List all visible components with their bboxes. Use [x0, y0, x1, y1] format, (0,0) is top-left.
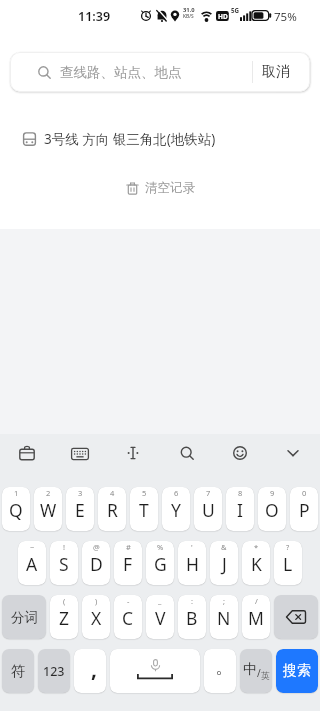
button[interactable] — [110, 649, 200, 693]
staticText: H — [186, 552, 199, 576]
staticText: Q — [9, 498, 23, 522]
staticText: % — [157, 542, 164, 552]
staticText: F — [123, 552, 133, 576]
staticText: 5G — [231, 6, 240, 14]
staticText: P — [299, 498, 310, 522]
button[interactable]: _ — [146, 595, 174, 639]
button[interactable]: 2 — [34, 487, 62, 531]
staticText: ) — [95, 596, 98, 606]
button[interactable]: ' — [178, 541, 206, 585]
staticText: 搜索 — [283, 662, 311, 680]
staticText: _ — [158, 596, 162, 606]
staticText: K — [251, 552, 262, 576]
staticText: ~ — [30, 542, 35, 552]
staticText: 9 — [270, 488, 275, 498]
button[interactable]: 中/英 — [240, 649, 272, 693]
button[interactable]: # — [114, 541, 142, 585]
button[interactable]: ; — [210, 595, 238, 639]
button[interactable] — [276, 441, 310, 465]
button[interactable]: @ — [82, 541, 110, 585]
button[interactable]: 清空记录 — [0, 176, 320, 200]
staticText: / — [255, 596, 258, 606]
staticText: 。 — [215, 656, 233, 679]
button[interactable]: ( — [50, 595, 78, 639]
button[interactable] — [116, 441, 150, 465]
staticText: I — [237, 498, 243, 522]
staticText: O — [265, 498, 279, 522]
button[interactable]: % — [146, 541, 174, 585]
button[interactable]: 8 — [226, 487, 254, 531]
button[interactable] — [223, 441, 257, 465]
staticText: V — [155, 606, 166, 630]
button[interactable] — [274, 595, 318, 639]
button[interactable]: 1 — [2, 487, 30, 531]
button[interactable]: 6 — [162, 487, 190, 531]
button[interactable]: 0 — [290, 487, 318, 531]
button[interactable]: 9 — [258, 487, 286, 531]
staticText: 1 — [14, 488, 19, 498]
staticText: 6 — [174, 488, 179, 498]
button[interactable]: 符 — [2, 649, 34, 693]
staticText: HD — [218, 12, 228, 21]
staticText: R — [107, 498, 118, 522]
button[interactable]: 3 — [66, 487, 94, 531]
staticText: ? — [286, 542, 290, 552]
staticText: ' — [191, 542, 193, 552]
button[interactable]: ? — [274, 541, 302, 585]
staticText: ; — [223, 596, 226, 606]
button[interactable]: 分词 — [2, 595, 46, 639]
staticText: * — [254, 542, 259, 552]
staticText: Y — [171, 498, 181, 522]
staticText: : — [191, 596, 194, 606]
staticText: 11:39 — [78, 8, 111, 25]
staticText: 75% — [274, 9, 297, 25]
staticText: 8 — [238, 488, 243, 498]
staticText: ! — [63, 542, 66, 552]
staticText: & — [221, 542, 227, 552]
button[interactable]: 查线路、站点、地点 — [10, 52, 310, 92]
staticText: - — [127, 596, 130, 606]
button[interactable]: / — [242, 595, 270, 639]
button[interactable] — [10, 441, 44, 465]
staticText: U — [202, 498, 215, 522]
button[interactable] — [170, 441, 204, 465]
staticText: 中/英 — [243, 661, 270, 681]
button[interactable]: : — [178, 595, 206, 639]
button[interactable]: ~ — [18, 541, 46, 585]
staticText: A — [26, 552, 38, 576]
staticText: Z — [59, 606, 70, 630]
button[interactable]: , — [74, 649, 106, 693]
staticText: G — [154, 552, 167, 576]
staticText: 清空记录 — [145, 180, 195, 196]
button[interactable]: ) — [82, 595, 110, 639]
button[interactable]: ! — [50, 541, 78, 585]
button[interactable]: - — [114, 595, 142, 639]
staticText: T — [139, 498, 149, 522]
button[interactable]: 搜索 — [276, 649, 318, 693]
button[interactable] — [63, 441, 97, 465]
button[interactable]: 取消 — [253, 52, 310, 92]
staticText: 查线路、站点、地点 — [60, 64, 182, 81]
button[interactable]: * — [242, 541, 270, 585]
button[interactable]: 。 — [204, 649, 236, 693]
staticText: , — [91, 655, 97, 684]
staticText: 7 — [206, 488, 211, 498]
staticText: B — [186, 606, 198, 630]
staticText: J — [222, 552, 227, 576]
button[interactable]: 123 — [38, 649, 70, 693]
button[interactable]: & — [210, 541, 238, 585]
staticText: 5 — [142, 488, 147, 498]
button[interactable]: 7 — [194, 487, 222, 531]
staticText: # — [126, 542, 131, 552]
staticText: 4 — [110, 488, 115, 498]
staticText: M — [248, 606, 264, 630]
button[interactable]: 5 — [130, 487, 158, 531]
staticText: 31.0 — [183, 6, 195, 14]
staticText: X — [91, 606, 102, 630]
button[interactable]: 3号线 方向 银三角北(地铁站) — [0, 119, 320, 159]
button[interactable]: 4 — [98, 487, 126, 531]
staticText: 符 — [11, 662, 26, 680]
staticText: 3号线 方向 银三角北(地铁站) — [44, 130, 216, 148]
staticText: N — [217, 606, 231, 630]
staticText: W — [40, 498, 57, 522]
